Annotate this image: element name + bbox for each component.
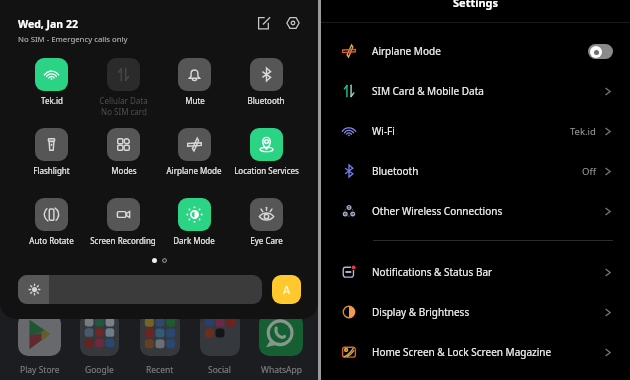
- staticText: Home Screen & Lock Screen Magazine: [372, 345, 602, 359]
- staticText: Other Wireless Connections: [372, 204, 602, 218]
- staticText: Location Services: [234, 165, 299, 176]
- staticText: No SIM card: [101, 106, 147, 117]
- button[interactable]: Screen Recording: [87, 198, 159, 246]
- staticText: Recent: [146, 364, 174, 376]
- staticText: Tek.id: [41, 95, 63, 106]
- staticText: Screen Recording: [90, 235, 156, 246]
- button[interactable]: Edit quick settings: [255, 14, 273, 32]
- button[interactable]: Wi-Fi: [321, 111, 630, 151]
- staticText: Modes: [111, 165, 137, 176]
- staticText: WhatsApp: [261, 364, 302, 376]
- staticText: Dark Mode: [173, 235, 215, 246]
- button[interactable]: Auto Rotate: [15, 198, 87, 246]
- staticText: SIM Card & Mobile Data: [372, 84, 602, 98]
- staticText: Auto Rotate: [29, 235, 74, 246]
- button[interactable]: Home Screen & Lock Screen Magazine: [321, 332, 630, 372]
- staticText: Eye Care: [250, 235, 283, 246]
- staticText: Wed, Jan 22: [18, 17, 78, 31]
- staticText: Airplane Mode: [372, 44, 588, 58]
- button[interactable]: Tek.id: [15, 58, 87, 106]
- button[interactable]: Airplane Mode: [158, 128, 230, 176]
- staticText: Google: [85, 364, 114, 376]
- button[interactable]: Modes: [87, 128, 159, 176]
- button[interactable]: Cellular Data: [87, 58, 159, 117]
- staticText: Notifications & Status Bar: [372, 265, 602, 279]
- button[interactable]: Location Services: [230, 128, 302, 176]
- staticText: Wi-Fi: [372, 124, 570, 138]
- button[interactable]: Airplane Mode: [321, 31, 630, 71]
- button[interactable]: [588, 44, 613, 59]
- button[interactable]: Dark Mode: [158, 198, 230, 246]
- staticText: Cellular Data: [99, 95, 148, 106]
- button[interactable]: Flashlight: [15, 128, 87, 176]
- staticText: Display & Brightness: [372, 305, 602, 319]
- button[interactable]: Notifications & Status Bar: [321, 252, 630, 292]
- button[interactable]: A: [272, 275, 301, 304]
- button[interactable]: Other Wireless Connections: [321, 191, 630, 231]
- button[interactable]: Display & Brightness: [321, 292, 630, 332]
- button[interactable]: Bluetooth: [321, 151, 630, 191]
- staticText: Social: [208, 364, 232, 376]
- button[interactable]: SIM Card & Mobile Data: [321, 71, 630, 111]
- staticText: Tek.id: [570, 125, 596, 138]
- staticText: Settings: [453, 0, 499, 10]
- staticText: Bluetooth: [247, 95, 285, 106]
- staticText: Mute: [185, 95, 205, 106]
- button[interactable]: Eye Care: [230, 198, 302, 246]
- staticText: Bluetooth: [372, 164, 582, 178]
- staticText: Airplane Mode: [166, 165, 222, 176]
- button[interactable]: Mute: [158, 58, 230, 106]
- staticText: Play Store: [20, 364, 60, 376]
- button[interactable]: Settings: [284, 14, 302, 32]
- staticText: No SIM - Emergency calls only: [18, 34, 128, 45]
- button[interactable]: Bluetooth: [230, 58, 302, 106]
- staticText: Flashlight: [33, 165, 70, 176]
- staticText: Off: [582, 165, 596, 178]
- button[interactable]: [18, 275, 262, 304]
- staticText: A: [283, 282, 291, 297]
